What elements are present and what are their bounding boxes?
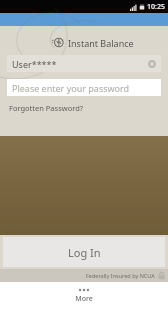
button[interactable]: Log In (3, 237, 165, 267)
staticText: More (75, 294, 93, 304)
staticText: Forgotten Password? (9, 103, 84, 113)
staticText: 10:25 (147, 2, 165, 12)
button[interactable]: User***** (7, 55, 161, 72)
staticText: Instant Balance (68, 37, 134, 49)
staticText: Please enter your password (12, 82, 130, 94)
button[interactable]: Forgotten Password? (9, 103, 84, 113)
button[interactable]: More (0, 282, 168, 310)
staticText: User***** (12, 58, 57, 70)
button[interactable]: Instant Balance (0, 34, 168, 51)
staticText: Log In (68, 245, 101, 260)
button[interactable]: Please enter your password (7, 79, 161, 96)
staticText: Federally Insured by NCUA (86, 272, 155, 279)
other: Secure (157, 271, 166, 280)
